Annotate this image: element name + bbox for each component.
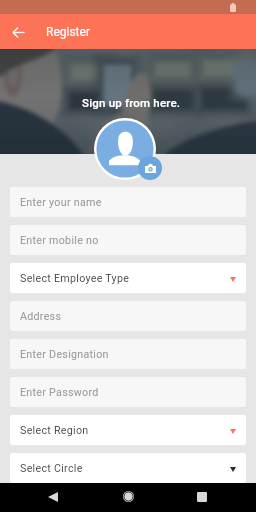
staticText: Select Region [20, 424, 89, 437]
button[interactable]: Address [10, 301, 246, 331]
staticText: Enter Password [20, 386, 99, 399]
button[interactable]: Home [113, 482, 143, 511]
staticText: Address [20, 310, 62, 323]
button[interactable]: Back [3, 17, 33, 47]
button[interactable]: Enter mobile no [10, 225, 246, 255]
staticText: Enter mobile no [20, 234, 99, 247]
button[interactable]: Profile photo [94, 118, 156, 180]
staticText: Register [46, 25, 90, 39]
staticText: Enter Designation [20, 348, 109, 361]
button[interactable]: Select Region [10, 415, 246, 445]
button[interactable]: Select Circle [10, 453, 246, 483]
button[interactable]: Change photo [138, 156, 162, 180]
button[interactable]: Enter your name [10, 187, 246, 217]
staticText: Select Employee Type [20, 272, 130, 285]
button[interactable]: Recent apps [187, 482, 217, 511]
button[interactable]: Enter Designation [10, 339, 246, 369]
button[interactable]: Select Employee Type [10, 263, 246, 293]
button[interactable]: Back [38, 482, 68, 511]
button[interactable]: Enter Password [10, 377, 246, 407]
staticText: Select Circle [20, 462, 83, 475]
staticText: Sign up from here. [82, 96, 181, 109]
staticText: Enter your name [20, 196, 102, 209]
